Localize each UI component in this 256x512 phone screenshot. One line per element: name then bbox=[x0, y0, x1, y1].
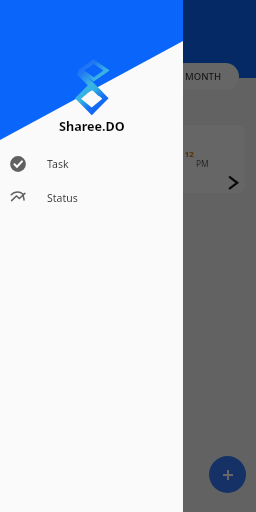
button[interactable]: WEEK bbox=[131, 63, 183, 90]
button[interactable]: Add bbox=[209, 456, 246, 493]
button[interactable]: Task bbox=[0, 147, 183, 181]
button[interactable]: Status bbox=[0, 181, 183, 215]
staticText: Sharee.DO bbox=[59, 118, 125, 135]
staticText: Apr 12 bbox=[169, 149, 194, 160]
button[interactable]: Apr 12 bbox=[11, 125, 245, 193]
staticText: MONTH bbox=[185, 70, 221, 83]
staticText: Task bbox=[47, 157, 69, 171]
staticText: PM bbox=[196, 158, 209, 169]
button[interactable]: MONTH bbox=[183, 63, 239, 90]
button[interactable] bbox=[0, 0, 256, 512]
staticText: Status bbox=[47, 191, 78, 205]
